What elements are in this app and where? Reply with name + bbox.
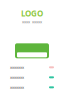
staticText: xxxxxxx <box>10 75 24 80</box>
staticText: xxxxxxx <box>10 85 24 90</box>
staticText: xxxxxxx <box>10 65 24 70</box>
staticText: LOGO <box>21 8 43 19</box>
staticText: xxxx xxxxx <box>22 19 42 24</box>
